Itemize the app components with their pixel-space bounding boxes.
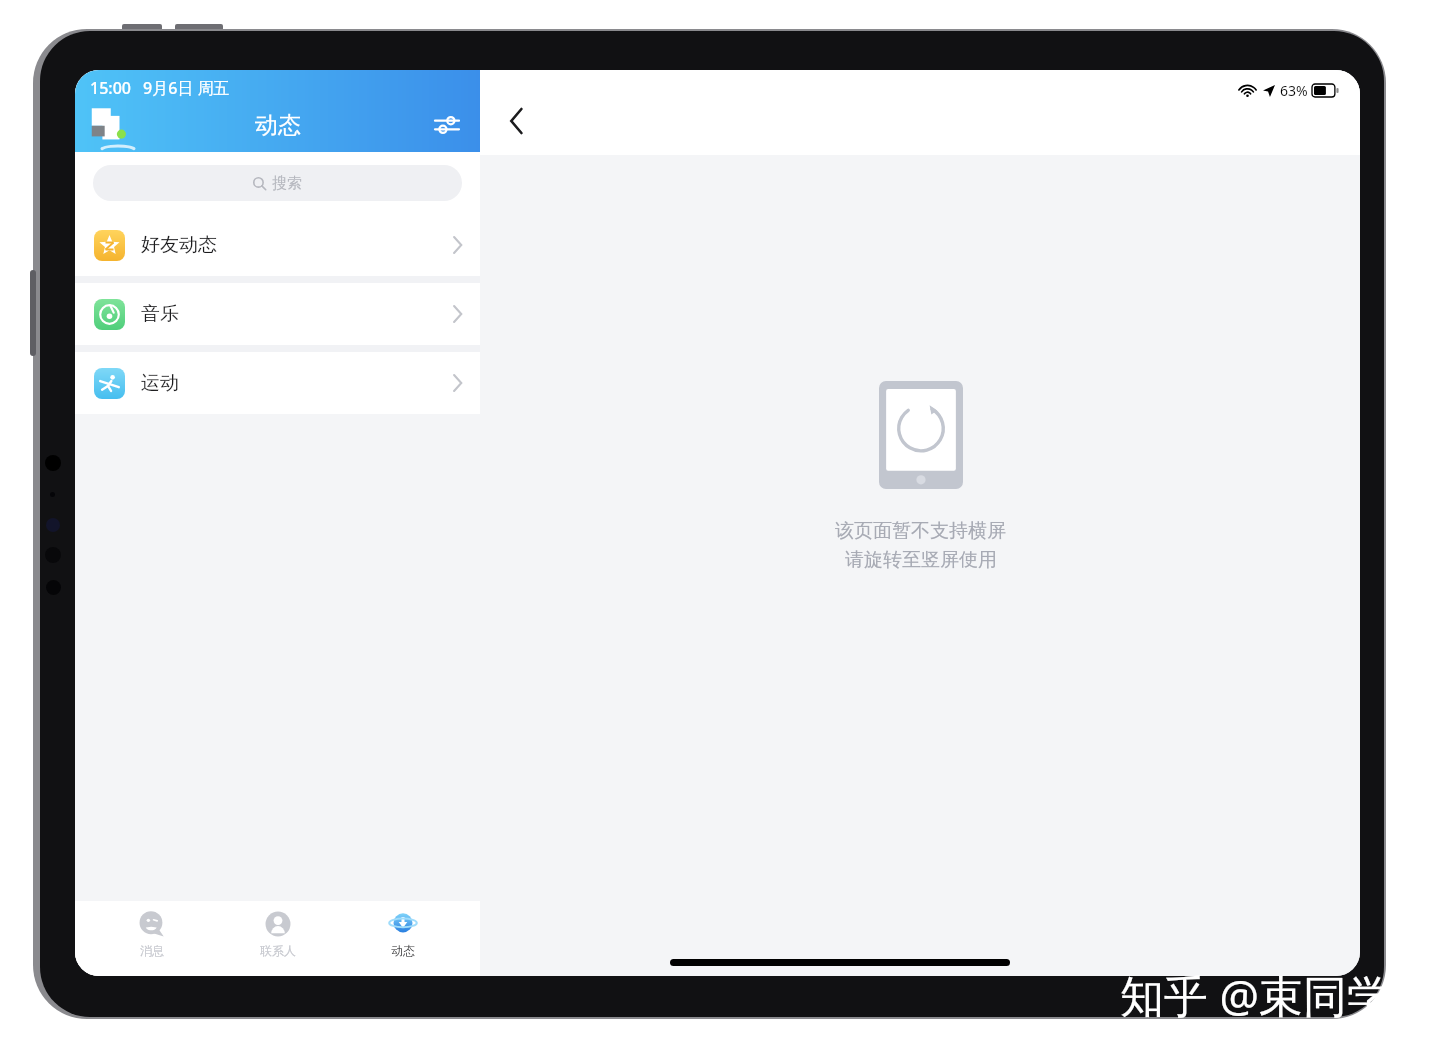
staticText: 搜索 xyxy=(272,174,302,193)
button[interactable]: Profile xyxy=(91,106,129,144)
staticText: 联系人 xyxy=(260,943,296,958)
staticText: 好友动态 xyxy=(141,233,217,257)
button[interactable]: 联系人 xyxy=(230,909,326,976)
staticText: 消息 xyxy=(140,943,164,958)
staticText: 运动 xyxy=(141,371,179,395)
button[interactable]: 消息 xyxy=(104,909,200,976)
button[interactable]: 搜索 xyxy=(93,165,462,201)
staticText: 音乐 xyxy=(141,302,179,326)
staticText: 63% xyxy=(1280,81,1308,100)
button[interactable]: Back xyxy=(494,99,538,143)
staticText: 9月6日 周五 xyxy=(143,77,230,99)
button[interactable]: 音乐 xyxy=(75,283,480,345)
staticText: 该页面暂不支持横屏 xyxy=(835,519,1006,543)
staticText: 动态 xyxy=(255,111,301,140)
button[interactable]: 运动 xyxy=(75,352,480,414)
staticText: 请旋转至竖屏使用 xyxy=(845,548,997,572)
staticText: 15:00 xyxy=(90,77,131,99)
button[interactable]: 好友动态 xyxy=(75,214,480,276)
button[interactable]: 动态 xyxy=(355,909,451,976)
staticText: 动态 xyxy=(391,943,415,958)
button[interactable]: Filter settings xyxy=(430,108,464,142)
staticText: 知乎 @束同学 xyxy=(1120,965,1391,1025)
